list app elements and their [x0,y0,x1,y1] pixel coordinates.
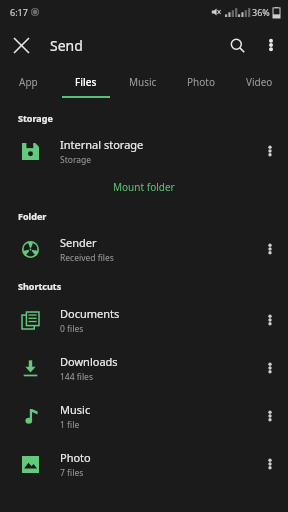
staticText: Internal storage [60,137,144,152]
button[interactable]: Photo [0,440,288,488]
button[interactable]: More options for Downloads [252,344,288,392]
staticText: 0 files [60,323,84,335]
staticText: 6:17 [10,6,28,18]
staticText: Storage [60,154,92,166]
staticText: 7 files [60,467,84,479]
staticText: Send [50,36,83,55]
button[interactable]: Mount folder [0,174,288,200]
staticText: Music [129,75,157,89]
button[interactable]: Video [230,66,288,98]
staticText: 1 file [60,419,80,431]
staticText: Folder [18,210,47,222]
staticText: Documents [60,306,120,321]
staticText: Video [246,75,273,89]
staticText: Files [75,75,97,89]
staticText: Downloads [60,354,118,369]
button[interactable]: More options [254,28,288,62]
staticText: Received files [60,252,114,264]
button[interactable]: Music [0,392,288,440]
staticText: Storage [18,112,53,124]
button[interactable]: More options for Music [252,392,288,440]
staticText: Mount folder [113,180,175,194]
staticText: Photo [60,450,91,465]
staticText: 36% [252,6,270,18]
staticText: Music [60,402,91,417]
staticText: 144 files [60,371,93,383]
staticText: App [19,75,38,89]
staticText: Photo [187,75,215,89]
button[interactable]: More options for Sender [252,226,288,272]
button[interactable]: Search [220,28,254,62]
staticText: Sender [60,235,97,250]
button[interactable]: Downloads [0,344,288,392]
button[interactable]: Internal storage [0,128,288,174]
button[interactable]: Documents [0,296,288,344]
button[interactable]: More options for Documents [252,296,288,344]
staticText: Shortcuts [18,280,62,292]
button[interactable]: Files [57,66,114,98]
button[interactable]: More options for Internal storage [252,128,288,174]
button[interactable]: App [0,66,57,98]
button[interactable]: More options for Photo [252,440,288,488]
button[interactable]: Close [4,28,38,62]
button[interactable]: Photo [172,66,230,98]
button[interactable]: Music [114,66,172,98]
button[interactable]: Sender [0,226,288,272]
